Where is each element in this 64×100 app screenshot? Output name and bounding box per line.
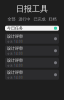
staticText: 已完成	[33, 17, 45, 22]
staticText: 今天 14:00	[7, 52, 23, 55]
button[interactable]: 进行中	[18, 17, 30, 22]
staticText: 今日任务	[7, 26, 23, 31]
staticText: 设计评审	[7, 34, 23, 39]
staticText: 设计评审	[7, 70, 23, 75]
staticText: 归档	[48, 17, 56, 22]
staticText: 今天 14:00	[7, 76, 23, 79]
staticText: 日报工具	[16, 4, 48, 14]
staticText: 今天 14:00	[7, 64, 23, 67]
staticText: 设计评审	[7, 46, 23, 51]
button[interactable]: 归档	[48, 17, 56, 22]
staticText: 全部	[7, 17, 15, 22]
staticText: 今天 14:00	[7, 40, 23, 43]
button[interactable]: 全部	[7, 17, 15, 22]
button[interactable]: 已完成	[33, 17, 45, 22]
staticText: 进行中	[18, 17, 30, 22]
staticText: 设计评审	[7, 58, 23, 63]
